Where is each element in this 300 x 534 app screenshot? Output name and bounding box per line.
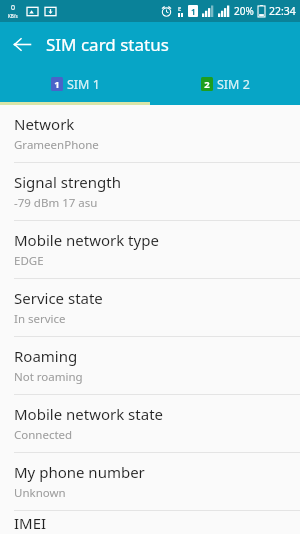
staticText: Signal strength — [14, 172, 121, 192]
button[interactable]: Mobile network state — [0, 395, 300, 452]
staticText: Mobile network type — [14, 230, 159, 250]
staticText: Mobile network state — [14, 404, 164, 424]
staticText: KB/s — [8, 13, 18, 19]
staticText: SIM card status — [46, 33, 169, 56]
staticText: Not roaming — [14, 369, 83, 385]
staticText: 1 — [191, 6, 196, 17]
staticText: In service — [14, 311, 66, 327]
button[interactable]: 2 — [150, 66, 300, 102]
staticText: My phone number — [14, 462, 145, 482]
staticText: SIM 2 — [217, 76, 250, 93]
staticText: 20% — [234, 4, 254, 18]
button[interactable]: Mobile network type — [0, 221, 300, 278]
staticText: Connected — [14, 427, 73, 443]
button[interactable]: IMEI — [0, 511, 300, 534]
staticText: 1 — [54, 78, 60, 91]
staticText: IMEI — [14, 513, 47, 533]
staticText: GrameenPhone — [14, 137, 99, 153]
button[interactable]: 1 — [0, 66, 150, 102]
staticText: Roaming — [14, 346, 78, 366]
staticText: Network — [14, 114, 75, 134]
button[interactable]: Roaming — [0, 337, 300, 394]
staticText: Unknown — [14, 485, 66, 501]
staticText: Service state — [14, 288, 103, 308]
button[interactable]: Back — [0, 22, 44, 66]
staticText: -79 dBm 17 asu — [14, 195, 98, 211]
staticText: EDGE — [14, 253, 44, 269]
staticText: 22:34 — [269, 4, 296, 18]
staticText: E — [178, 5, 182, 13]
button[interactable]: My phone number — [0, 453, 300, 510]
staticText: 2 — [204, 78, 210, 91]
button[interactable]: Service state — [0, 279, 300, 336]
staticText: SIM 1 — [67, 76, 100, 93]
button[interactable]: Network — [0, 105, 300, 162]
staticText: 0 — [11, 3, 16, 13]
button[interactable]: Signal strength — [0, 163, 300, 220]
